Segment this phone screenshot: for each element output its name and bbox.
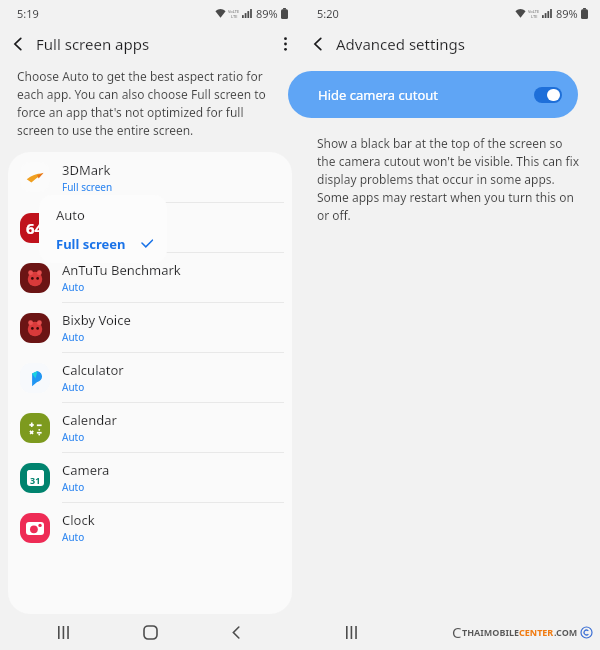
button[interactable]: AnTuTu Benchmark [8, 252, 292, 302]
staticText: Hide camera cutout [318, 86, 534, 104]
staticText: Auto [62, 380, 85, 394]
staticText: Auto [62, 480, 85, 494]
staticText: Show a black bar at the top of the scree… [317, 135, 584, 224]
staticText: AnTuTu Benchmark [62, 261, 181, 279]
staticText: 5:20 [317, 6, 339, 21]
staticText: Auto [62, 280, 85, 294]
button[interactable]: More options [270, 26, 300, 62]
button[interactable]: Hide camera cutout [288, 71, 578, 118]
button[interactable]: Recent apps [346, 626, 358, 639]
button[interactable]: Auto [39, 200, 167, 229]
button[interactable]: Bixby Voice [8, 302, 292, 352]
staticText: Auto [56, 206, 85, 224]
staticText: Full screen [62, 180, 113, 194]
button[interactable]: 31 [8, 452, 292, 502]
staticText: 64 [26, 218, 44, 238]
staticText: Full screen apps [36, 34, 270, 54]
staticText: Auto [62, 530, 85, 544]
staticText: VoLTE [228, 9, 240, 14]
staticText: LTE [231, 14, 238, 19]
button[interactable]: Home [128, 614, 172, 650]
staticText: 31 [30, 474, 41, 486]
staticText: Full screen [56, 235, 155, 253]
staticText: LTE [531, 14, 538, 19]
button[interactable]: Full screen [39, 229, 167, 258]
staticText: .COM [554, 626, 578, 638]
button[interactable]: Back [0, 26, 36, 62]
button[interactable]: Recent apps [42, 614, 86, 650]
staticText: VoLTE [528, 9, 540, 14]
staticText: 5:19 [17, 6, 39, 21]
button[interactable]: Calculator [8, 352, 292, 402]
staticText: Calculator [62, 361, 124, 379]
staticText: 89% [256, 6, 278, 21]
button[interactable]: 64 [8, 202, 292, 252]
staticText: C [452, 622, 462, 642]
button[interactable]: Clock [8, 502, 292, 552]
staticText: 3DMark [62, 161, 111, 179]
staticText: AnTuTu 3DBench [62, 211, 166, 229]
button[interactable]: 3DMark [8, 152, 292, 202]
staticText: 89% [556, 6, 578, 21]
staticText: CENTER [519, 626, 554, 638]
button[interactable]: Back [300, 26, 336, 62]
staticText: Auto [62, 230, 85, 244]
staticText: THAIMOBILE [462, 626, 519, 638]
staticText: Camera [62, 461, 110, 479]
staticText: Auto [62, 330, 85, 344]
staticText: Auto [62, 430, 85, 444]
button[interactable]: Back [214, 614, 258, 650]
staticText: Calendar [62, 411, 117, 429]
button[interactable]: Calendar [8, 402, 292, 452]
staticText: Advanced settings [336, 34, 465, 54]
staticText: Choose Auto to get the best aspect ratio… [17, 68, 282, 139]
staticText: Bixby Voice [62, 311, 131, 329]
staticText: Clock [62, 511, 95, 529]
